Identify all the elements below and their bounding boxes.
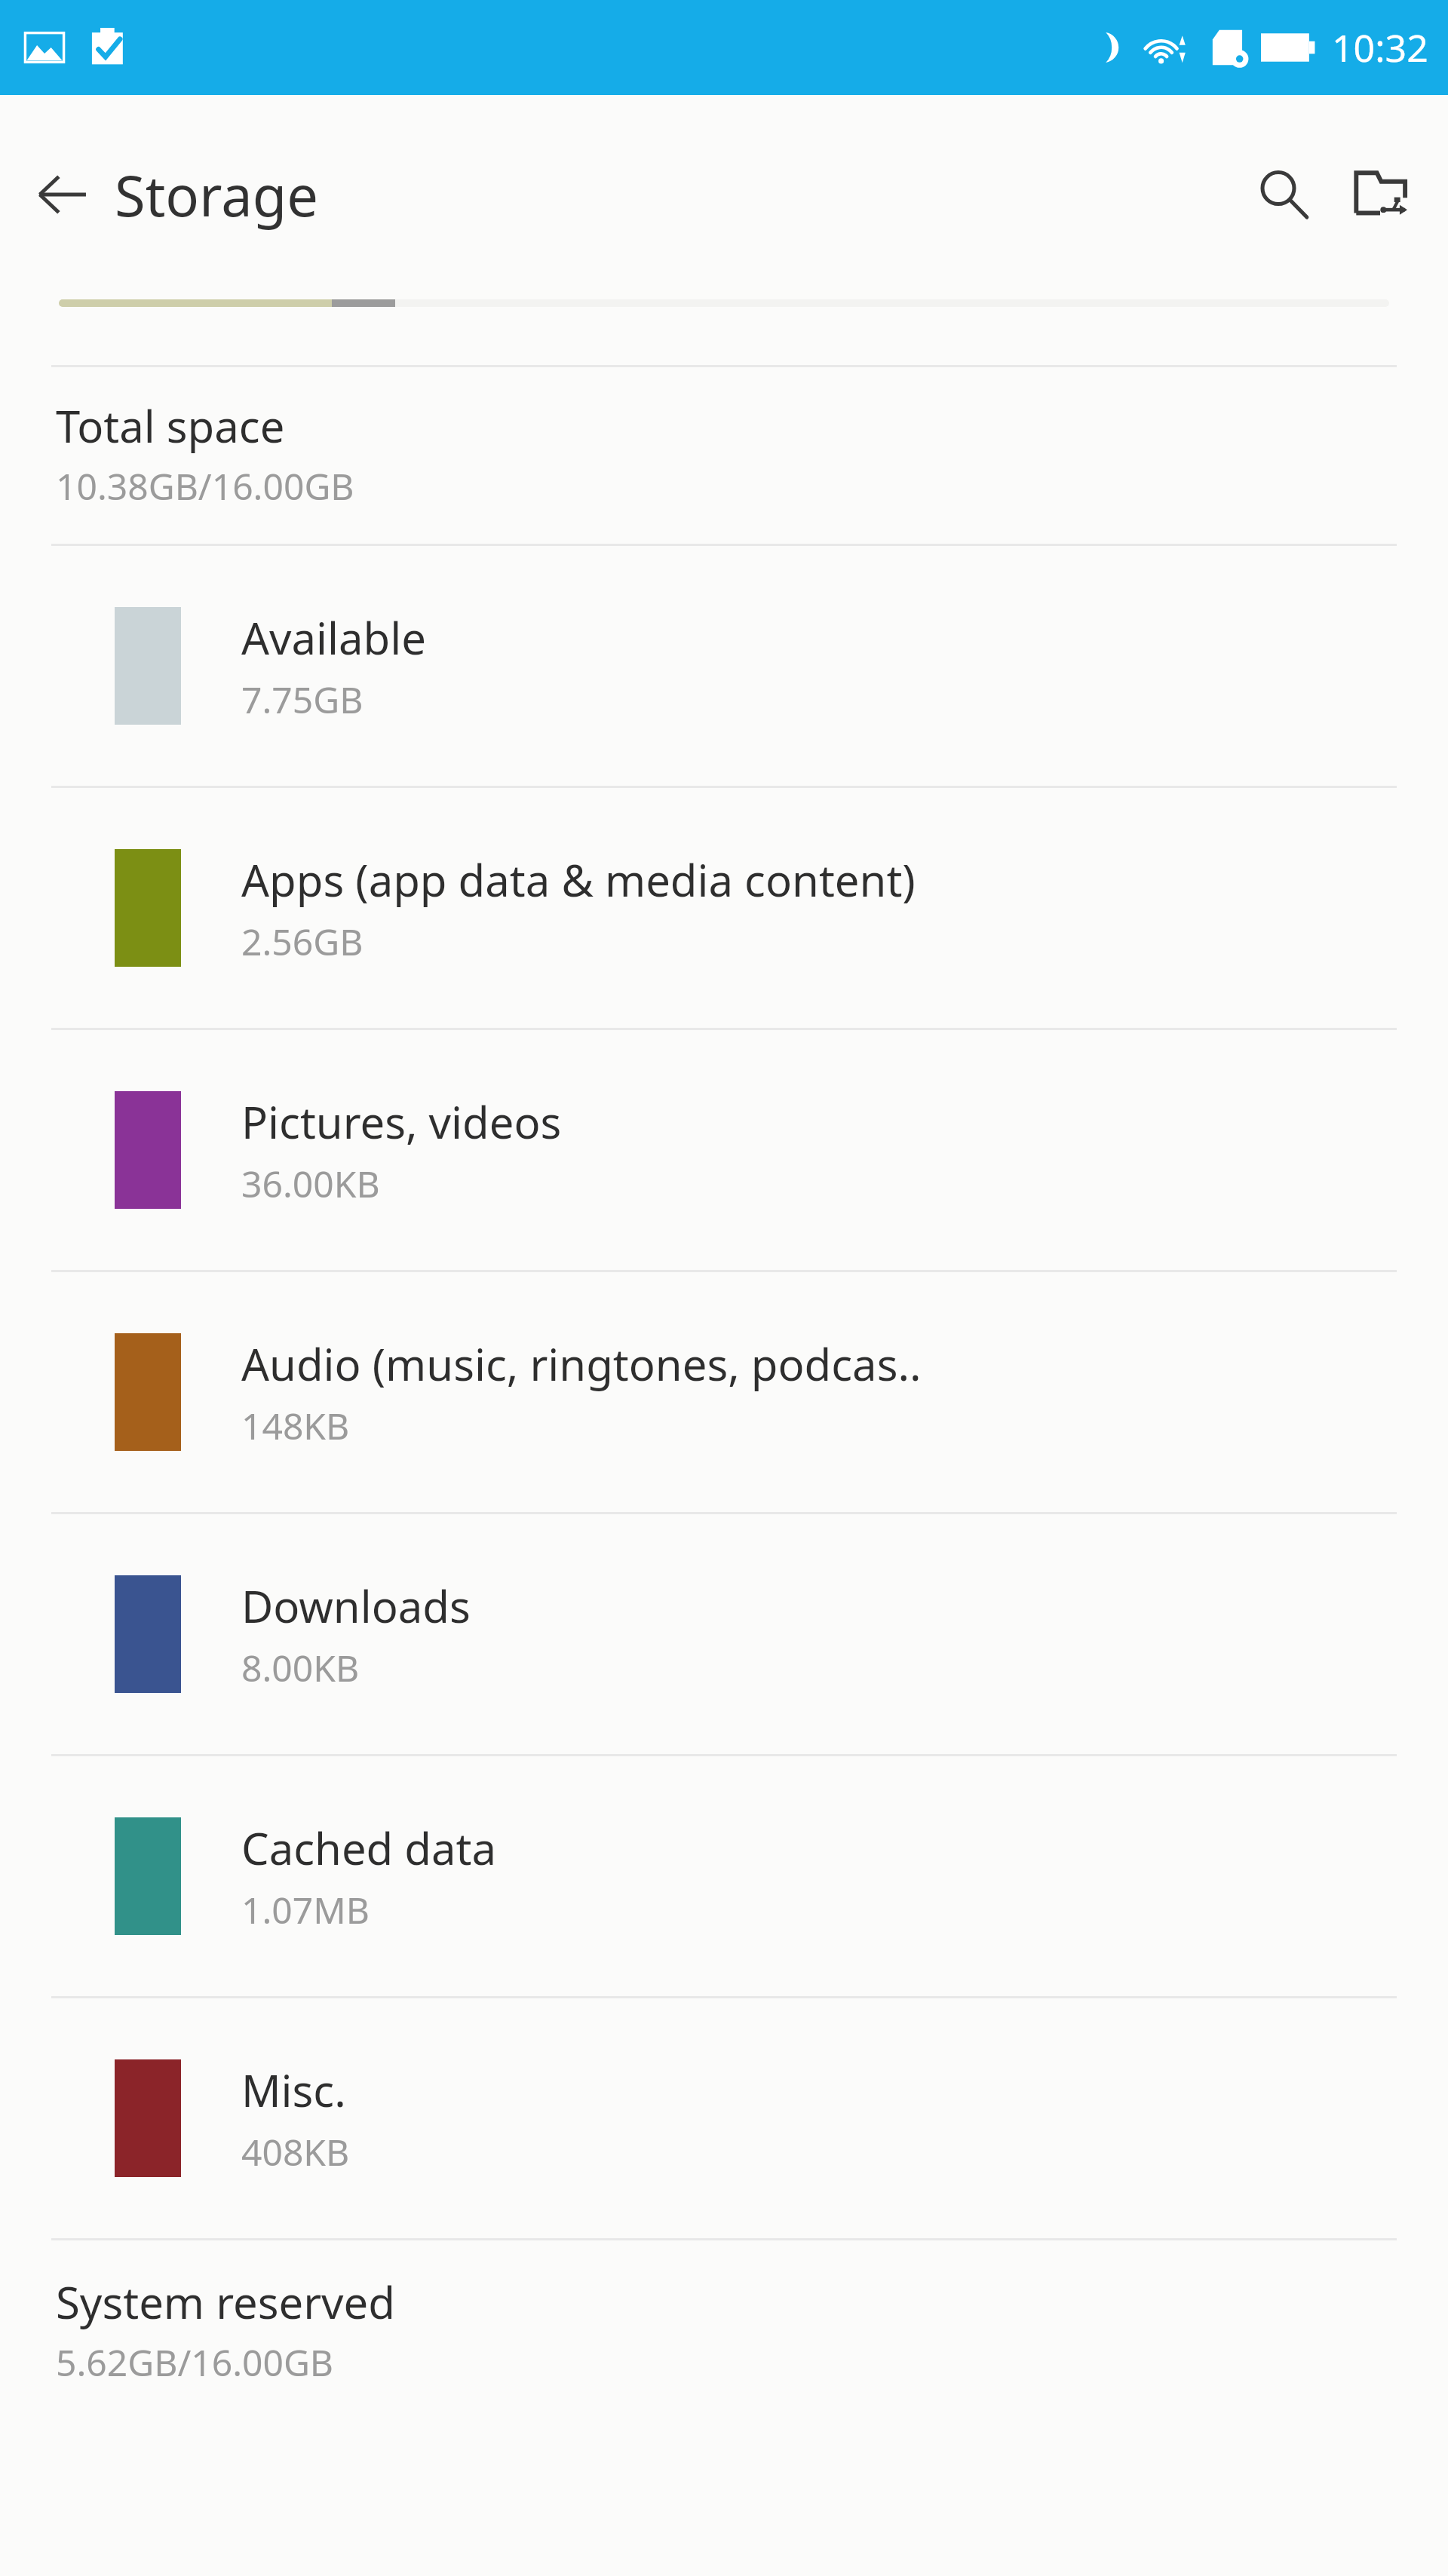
button[interactable]: System reserved	[0, 2240, 1448, 2405]
staticText: 7.75GB	[241, 675, 364, 724]
staticText: 2.56GB	[241, 917, 364, 966]
button[interactable]: Search	[1235, 146, 1332, 243]
staticText: 5.62GB/16.00GB	[56, 2338, 334, 2387]
staticText: 1.07MB	[241, 1885, 370, 1934]
staticText: Storage	[115, 157, 318, 233]
button[interactable]: Available	[0, 546, 1448, 786]
staticText: Apps (app data & media content)	[241, 850, 916, 909]
button[interactable]: USB storage	[1332, 146, 1428, 243]
staticText: Available	[241, 608, 426, 667]
button[interactable]: Cached data	[0, 1756, 1448, 1996]
button[interactable]: Back	[17, 149, 107, 240]
button[interactable]: Downloads	[0, 1514, 1448, 1754]
staticText: Misc.	[241, 2060, 346, 2120]
button[interactable]: Pictures, videos	[0, 1030, 1448, 1270]
staticText: Pictures, videos	[241, 1092, 562, 1152]
button[interactable]: Audio (music, ringtones, podcas..	[0, 1272, 1448, 1512]
staticText: 148KB	[241, 1401, 350, 1450]
staticText: 10:32	[1332, 22, 1428, 73]
staticText: System reserved	[56, 2272, 395, 2332]
button[interactable]: Apps (app data & media content)	[0, 788, 1448, 1028]
staticText: Cached data	[241, 1818, 497, 1878]
staticText: Total space	[56, 396, 285, 455]
staticText: 10.38GB/16.00GB	[56, 462, 354, 511]
staticText: Audio (music, ringtones, podcas..	[241, 1334, 922, 1394]
button[interactable]: Misc.	[0, 1998, 1448, 2238]
button[interactable]: Total space	[0, 367, 1448, 544]
staticText: Downloads	[241, 1576, 471, 1636]
staticText: 8.00KB	[241, 1643, 360, 1692]
staticText: 408KB	[241, 2127, 350, 2176]
staticText: 36.00KB	[241, 1159, 380, 1208]
